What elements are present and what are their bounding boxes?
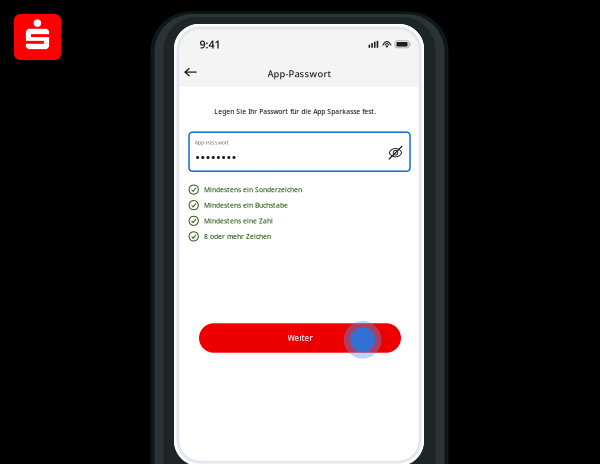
staticText: 9:41 [200,37,221,51]
staticText: Mindestens ein Buchstabe [204,201,288,210]
button[interactable]: Weiter [199,323,401,353]
button[interactable]: Zurück [177,57,204,87]
staticText: App-Passwort [195,139,229,146]
staticText: Mindestens ein Sonderzeichen [204,185,302,194]
staticText: Mindestens eine Zahl [204,216,273,225]
button[interactable]: Passwort anzeigen [383,138,407,168]
staticText: App-Passwort [268,67,332,80]
staticText: Legen Sie Ihr Passwort für die App Spark… [214,107,376,116]
staticText: 8 oder mehr Zeichen [204,232,271,241]
staticText: Weiter [287,333,312,343]
